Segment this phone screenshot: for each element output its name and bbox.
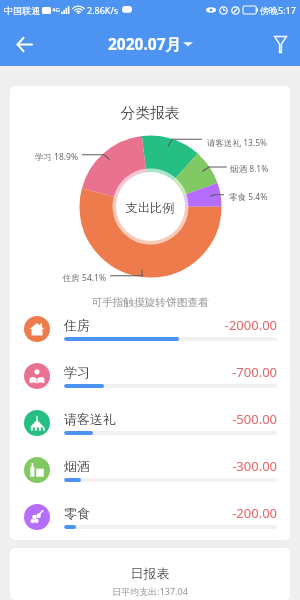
staticText: 中国联通: [4, 5, 40, 16]
button[interactable]: Filter: [266, 30, 294, 58]
staticText: 零食: [64, 505, 90, 521]
staticText: -500.00: [64, 410, 277, 428]
button[interactable]: 住房: [10, 305, 290, 352]
staticText: 学习: [64, 364, 90, 380]
staticText: 零食 5.4%: [229, 191, 290, 203]
button[interactable]: 烟酒: [10, 446, 290, 493]
staticText: 2.86K/s: [87, 4, 119, 16]
staticText: -200.00: [64, 504, 277, 522]
staticText: 4G: [52, 6, 60, 14]
staticText: 傍晚5:17: [260, 4, 296, 16]
staticText: 2020.07月: [108, 33, 182, 54]
button[interactable]: 零食: [10, 493, 290, 540]
staticText: 请客送礼 13.5%: [207, 137, 290, 149]
staticText: 住房 54.1%: [10, 272, 106, 284]
staticText: -2000.00: [64, 316, 277, 334]
button[interactable]: 学习: [10, 352, 290, 399]
staticText: 烟酒: [64, 458, 90, 474]
staticText: 请客送礼: [64, 411, 116, 427]
staticText: 分类报表: [10, 104, 290, 123]
staticText: 学习 18.9%: [10, 151, 78, 163]
staticText: 住房: [64, 317, 90, 333]
staticText: 日报表: [10, 565, 290, 581]
staticText: 日平均支出:137.04: [10, 585, 290, 597]
staticText: -300.00: [64, 457, 277, 475]
staticText: 可手指触摸旋转饼图查看: [10, 296, 290, 309]
button[interactable]: 2020.07月: [108, 33, 193, 54]
staticText: 烟酒 8.1%: [230, 163, 290, 175]
button[interactable]: 请客送礼: [10, 399, 290, 446]
staticText: -700.00: [64, 363, 277, 381]
staticText: 支出比例: [10, 200, 290, 215]
button[interactable]: Back: [9, 29, 39, 59]
